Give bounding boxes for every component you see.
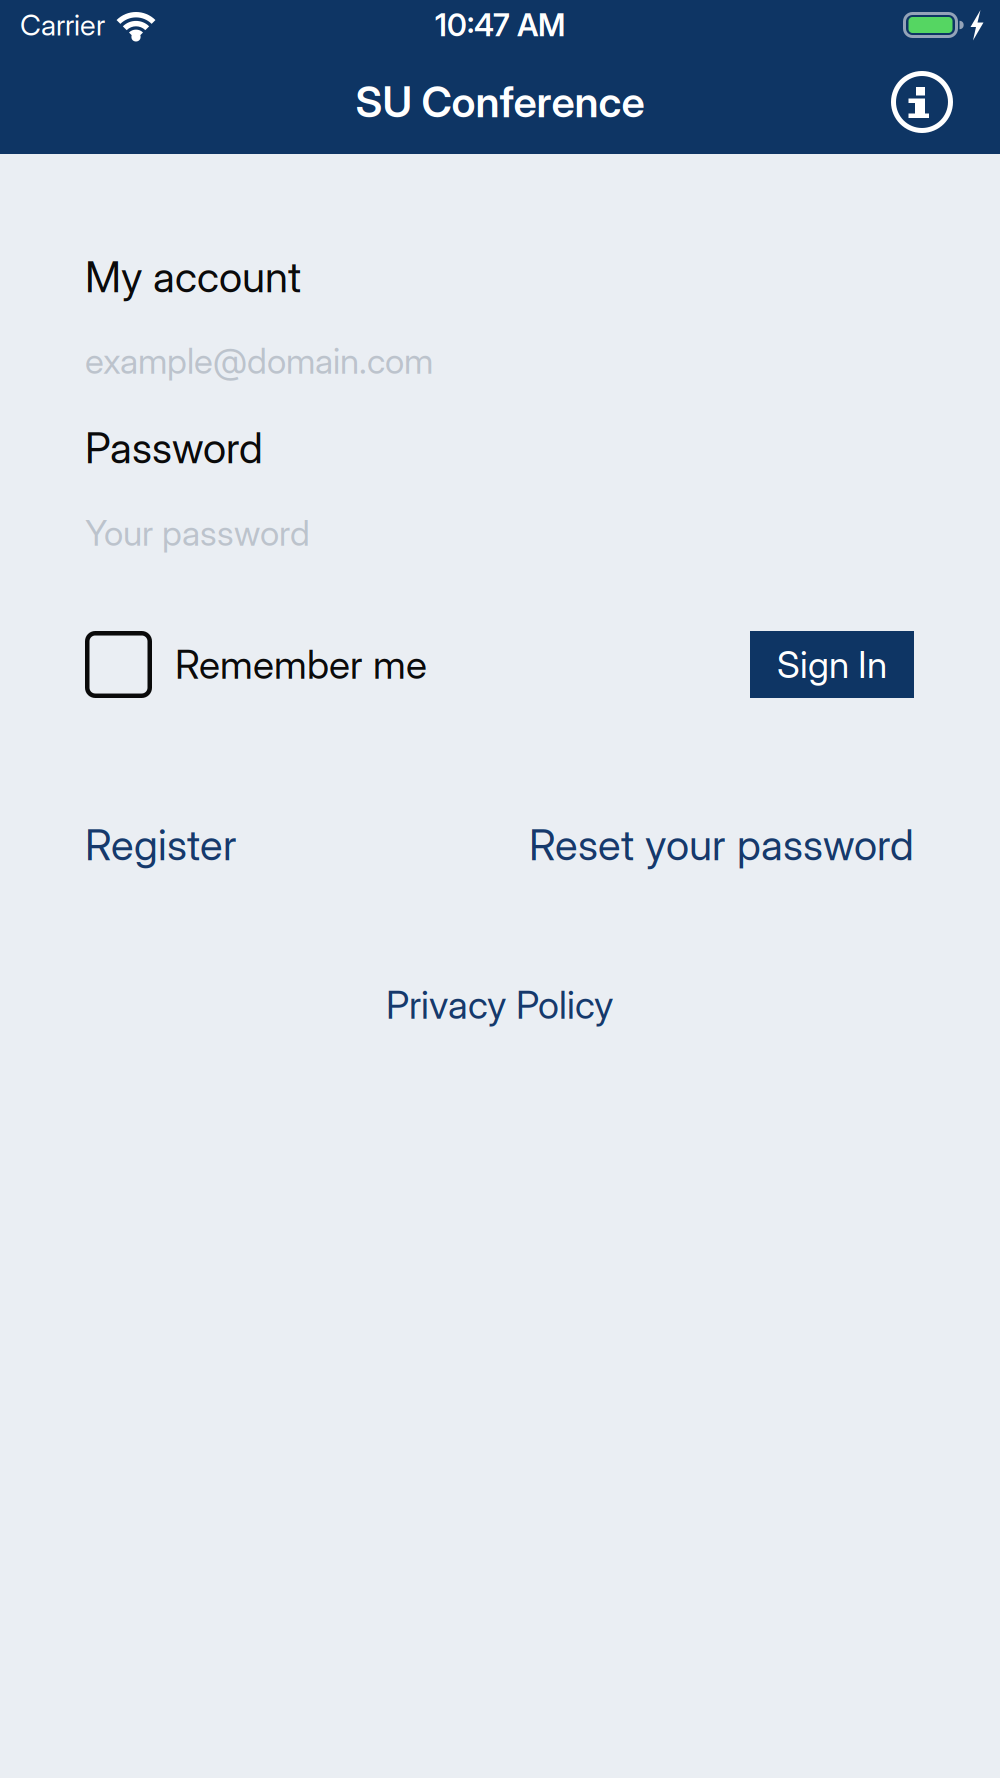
- button[interactable]: Privacy Policy: [386, 982, 613, 1028]
- staticText: Password: [85, 423, 263, 473]
- button[interactable]: Sign In: [750, 631, 914, 698]
- staticText: Your password: [85, 512, 310, 554]
- staticText: My account: [85, 252, 301, 302]
- staticText: 10:47 AM: [435, 6, 565, 44]
- staticText: Privacy Policy: [386, 982, 613, 1028]
- staticText: Reset your password: [529, 820, 914, 870]
- staticText: SU Conference: [355, 77, 644, 127]
- staticText: Sign In: [777, 642, 887, 687]
- staticText: Register: [85, 820, 237, 870]
- staticText: example@domain.com: [85, 340, 433, 382]
- button[interactable]: Register: [85, 820, 237, 870]
- button[interactable]: Reset your password: [529, 820, 914, 870]
- button[interactable]: Remember me: [85, 631, 427, 698]
- staticText: Carrier: [20, 7, 105, 43]
- staticText: Remember me: [175, 641, 427, 688]
- button[interactable]: About: [891, 71, 953, 133]
